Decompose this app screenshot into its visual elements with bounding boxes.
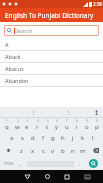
button[interactable]: j	[68, 131, 78, 144]
button[interactable]: 2	[12, 118, 22, 131]
staticText: 5	[47, 119, 49, 123]
button[interactable]: Search	[89, 159, 98, 168]
button[interactable]: Recents	[57, 170, 77, 183]
staticText: l	[92, 134, 94, 142]
button[interactable]: 7	[62, 118, 72, 131]
button[interactable]: 4	[32, 118, 42, 131]
button[interactable]: 0	[92, 118, 102, 131]
staticText: z	[20, 147, 23, 155]
staticText: n	[71, 147, 75, 155]
staticText: 4	[37, 119, 39, 123]
button[interactable]: 5	[42, 118, 52, 131]
button[interactable]: 6	[52, 118, 62, 131]
staticText: ?123	[4, 161, 14, 167]
button[interactable]: Shift	[0, 144, 16, 157]
button[interactable]: a	[6, 131, 17, 144]
staticText: 0	[96, 119, 98, 123]
button[interactable]: 9	[82, 118, 92, 131]
staticText: Search	[15, 27, 33, 34]
staticText: English To Punjabi Dictionary	[5, 11, 94, 20]
staticText: i	[76, 123, 78, 131]
staticText: A	[5, 41, 9, 48]
staticText: f	[42, 134, 45, 142]
button[interactable]: ?123	[1, 157, 16, 170]
staticText: r	[36, 123, 39, 131]
button[interactable]: Hide keyboard	[77, 170, 97, 183]
button[interactable]: z	[16, 144, 27, 157]
button[interactable]: l	[88, 131, 98, 144]
staticText: g	[51, 134, 55, 142]
staticText: s	[21, 134, 24, 142]
button[interactable]: Voice input	[93, 109, 100, 116]
staticText: c	[42, 147, 45, 155]
button[interactable]: s	[17, 131, 28, 144]
staticText: 6	[56, 119, 58, 123]
button[interactable]: b	[58, 144, 68, 157]
staticText: w	[15, 123, 20, 131]
staticText: u	[65, 123, 69, 131]
button[interactable]: m	[78, 144, 88, 157]
button[interactable]: Search	[4, 25, 99, 36]
button[interactable]: .	[75, 157, 85, 170]
staticText: Aback	[5, 53, 21, 60]
staticText: y	[55, 123, 59, 131]
staticText: e	[25, 123, 29, 131]
staticText: Abacus	[5, 65, 24, 72]
staticText: 7	[66, 119, 68, 123]
button[interactable]: Back	[17, 170, 37, 183]
staticText: h	[61, 134, 65, 142]
button[interactable]: g	[48, 131, 58, 144]
staticText: k	[81, 134, 85, 142]
button[interactable]: k	[78, 131, 88, 144]
staticText: 2	[17, 119, 19, 123]
button[interactable]: v	[48, 144, 58, 157]
button[interactable]: 3	[22, 118, 32, 131]
staticText: 3	[26, 119, 28, 123]
button[interactable]: 8	[72, 118, 82, 131]
button[interactable]: Home	[37, 170, 57, 183]
button[interactable]: ,	[16, 157, 26, 170]
staticText: b	[61, 147, 65, 155]
staticText: q	[5, 123, 9, 131]
button[interactable]: Abandon	[0, 75, 103, 87]
staticText: d	[31, 134, 35, 142]
staticText: 1	[6, 119, 8, 123]
button[interactable]: f	[38, 131, 48, 144]
staticText: m	[80, 147, 86, 155]
staticText: o	[85, 123, 89, 131]
staticText: 2:58	[93, 1, 102, 7]
button[interactable]: 1	[1, 118, 12, 131]
button[interactable]: n	[68, 144, 78, 157]
button[interactable]: c	[38, 144, 48, 157]
button[interactable]: x	[27, 144, 38, 157]
button[interactable]: Abacus	[0, 63, 103, 75]
staticText: 9	[86, 119, 88, 123]
staticText: ,	[20, 160, 22, 168]
staticText: a	[10, 134, 14, 142]
staticText: j	[72, 134, 74, 142]
staticText: Abandon	[5, 77, 29, 84]
button[interactable]: d	[28, 131, 38, 144]
staticText: v	[51, 147, 55, 155]
staticText: x	[31, 147, 35, 155]
button[interactable]: Backspace	[88, 144, 103, 157]
button[interactable]: h	[58, 131, 68, 144]
button[interactable]: Aback	[0, 51, 103, 63]
staticText: .	[79, 160, 81, 168]
staticText: 8	[76, 119, 78, 123]
staticText: p	[95, 123, 99, 131]
staticText: t	[46, 123, 49, 131]
button[interactable]: A	[0, 39, 103, 51]
